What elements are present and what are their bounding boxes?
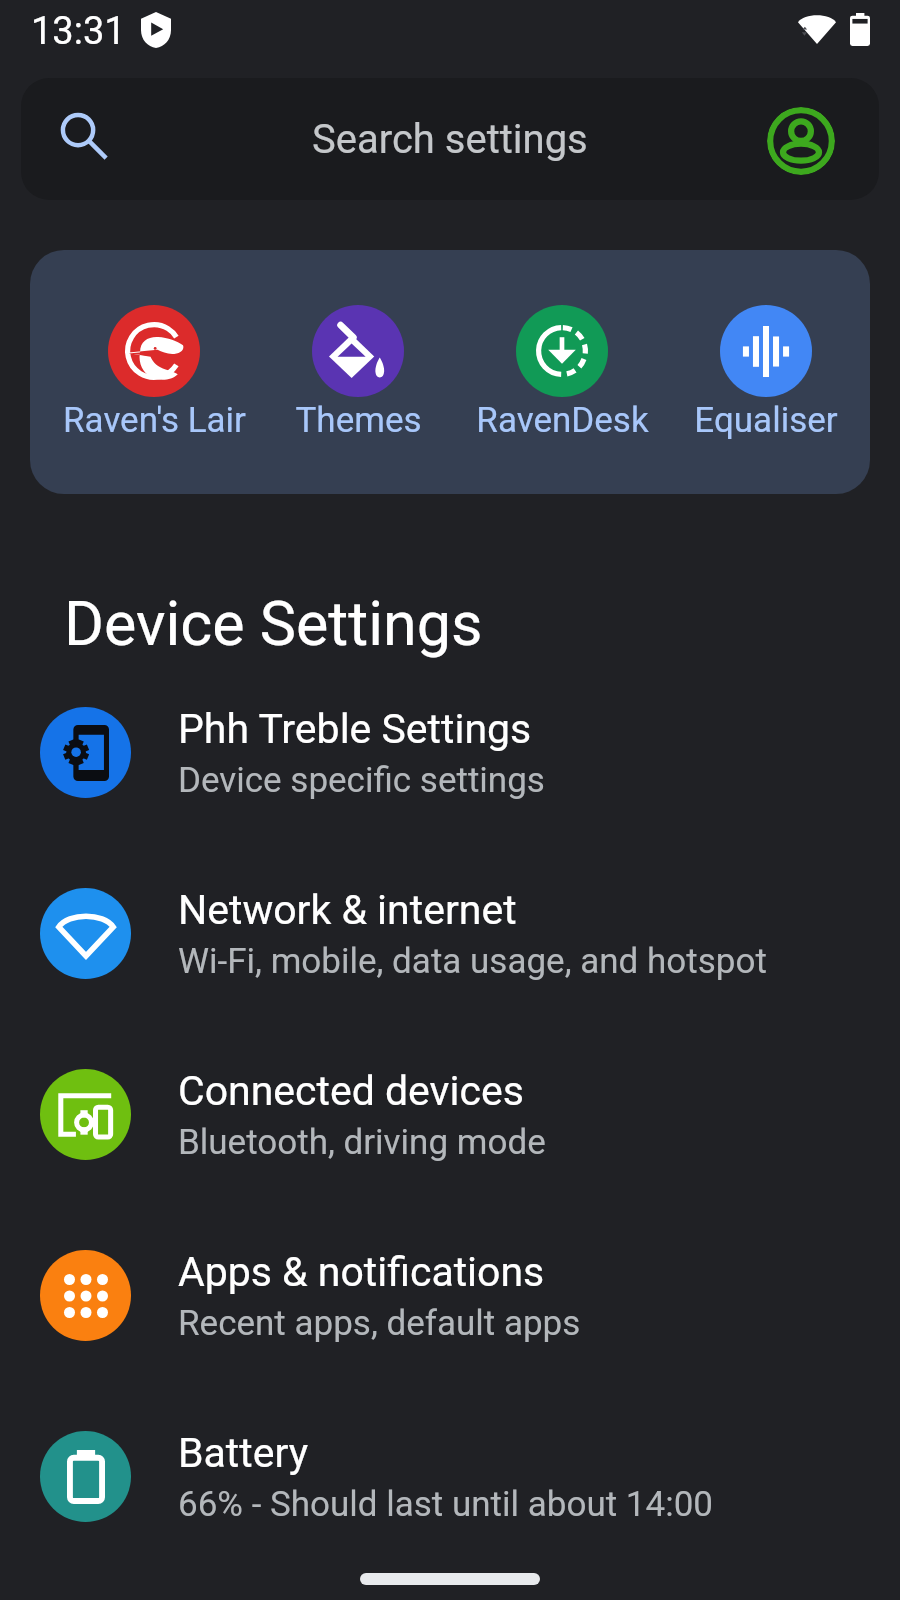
staticText: Bluetooth, driving mode — [178, 1122, 546, 1163]
staticText: RavenDesk — [476, 400, 649, 441]
staticText: Raven's Lair — [63, 400, 246, 441]
other: Search — [61, 113, 109, 161]
staticText: Recent apps, default apps — [178, 1303, 581, 1344]
staticText: Connected devices — [178, 1067, 524, 1115]
button[interactable]: RavenDesk — [452, 305, 672, 441]
button[interactable]: Connected devices — [0, 1024, 900, 1205]
staticText: Network & internet — [178, 886, 517, 934]
staticText: Equaliser — [694, 400, 838, 441]
button[interactable]: Raven's Lair — [44, 305, 264, 441]
button[interactable]: Equaliser — [656, 305, 876, 441]
button[interactable]: Network & internet — [0, 843, 900, 1024]
staticText: Themes — [295, 400, 422, 441]
staticText: Apps & notifications — [178, 1248, 545, 1296]
staticText: Wi-Fi, mobile, data usage, and hotspot — [178, 941, 767, 982]
button[interactable]: Phh Treble Settings — [0, 662, 900, 843]
staticText: Device Settings — [64, 588, 483, 659]
staticText: Device specific settings — [178, 760, 545, 801]
staticText: 66% - Should last until about 14:00 — [178, 1484, 714, 1525]
button[interactable]: Themes — [248, 305, 468, 441]
button[interactable]: Search — [21, 78, 879, 200]
button[interactable]: Apps & notifications — [0, 1205, 900, 1386]
staticText: Phh Treble Settings — [178, 705, 532, 753]
button[interactable]: Account — [767, 107, 835, 175]
button[interactable]: Battery — [0, 1386, 900, 1567]
staticText: Battery — [178, 1429, 309, 1477]
staticText: Search settings — [312, 116, 588, 163]
staticText: 13:31 — [31, 9, 126, 54]
